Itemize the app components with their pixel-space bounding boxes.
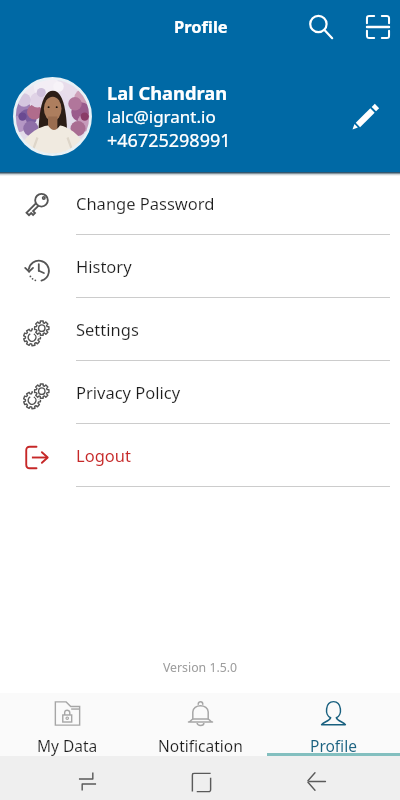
staticText: My Data: [37, 735, 98, 756]
staticText: lalc@igrant.io: [107, 105, 216, 128]
button[interactable]: Back: [307, 772, 326, 791]
staticText: Lal Chandran: [107, 80, 228, 105]
button[interactable]: Search: [297, 3, 345, 51]
staticText: Profile: [174, 15, 228, 37]
button[interactable]: Edit profile: [341, 92, 389, 140]
staticText: Privacy Policy: [76, 381, 181, 403]
button[interactable]: History: [0, 235, 400, 298]
staticText: Version 1.5.0: [0, 659, 400, 675]
button[interactable]: Recents: [78, 772, 97, 791]
button[interactable]: My Data: [0, 693, 134, 756]
button[interactable]: Profile: [267, 693, 400, 756]
button[interactable]: Privacy Policy: [0, 361, 400, 424]
button[interactable]: Settings: [0, 298, 400, 361]
staticText: Notification: [158, 735, 243, 756]
staticText: Logout: [76, 444, 131, 466]
button[interactable]: Logout: [0, 424, 400, 487]
staticText: Change Password: [76, 192, 215, 214]
staticText: +46725298991: [107, 128, 231, 153]
staticText: Profile: [310, 735, 357, 756]
button[interactable]: Scan QR code: [354, 3, 400, 51]
staticText: History: [76, 255, 132, 277]
button[interactable]: Notification: [134, 693, 267, 756]
staticText: Settings: [76, 318, 139, 340]
button[interactable]: Home: [192, 773, 211, 792]
button[interactable]: Change Password: [0, 172, 400, 235]
